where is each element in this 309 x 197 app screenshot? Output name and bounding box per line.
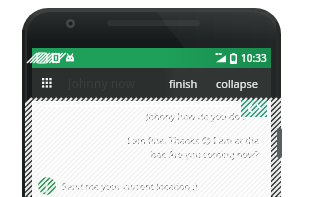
button[interactable]: Apps — [34, 70, 60, 96]
button[interactable]: finish — [163, 71, 204, 96]
staticText: Send me your current location :) — [62, 180, 198, 192]
staticText: I am fine, Thanks 😊 I am at the — [126, 134, 259, 146]
button[interactable]: Contact avatar — [38, 177, 56, 195]
button[interactable]: collapse — [210, 71, 265, 96]
staticText: finish — [169, 76, 198, 91]
staticText: Johnny how do you do ? — [146, 110, 247, 122]
button[interactable]: Code — [241, 100, 267, 117]
staticText: Johnny now — [68, 75, 136, 91]
staticText: bar. Are you coming now? — [150, 148, 259, 160]
staticText: 10:33 — [241, 51, 267, 65]
staticText: collapse — [216, 76, 259, 91]
staticText: J — [45, 179, 49, 193]
